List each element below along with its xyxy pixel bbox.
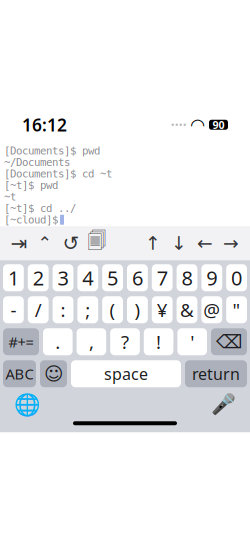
staticText: 6 — [132, 264, 143, 291]
staticText: . — [55, 329, 60, 354]
button[interactable]: 5 — [102, 264, 123, 291]
button[interactable]: , — [77, 328, 106, 355]
staticText: ⇥ — [10, 232, 27, 255]
staticText: 🗐 — [87, 228, 106, 259]
button[interactable]: Undo — [58, 230, 84, 256]
staticText: [~t]$ cd ../ — [4, 202, 76, 214]
staticText: : — [60, 297, 65, 322]
button[interactable]: 0 — [226, 264, 247, 291]
staticText: ↑ — [145, 233, 161, 254]
staticText: ¥ — [157, 297, 168, 322]
button[interactable]: Paste — [84, 230, 110, 256]
staticText: ? — [121, 329, 129, 354]
staticText: ☺ — [44, 363, 63, 384]
button[interactable]: Letters — [3, 360, 36, 387]
button[interactable]: space — [71, 360, 181, 387]
staticText: 90 — [212, 118, 224, 132]
button[interactable]: Right — [218, 230, 244, 256]
button[interactable]: Delete — [211, 328, 247, 355]
button[interactable]: Emoji — [40, 360, 67, 387]
staticText: 🌐 — [13, 392, 40, 416]
staticText: [Documents]$ cd ~t — [4, 168, 112, 180]
staticText: ◠ — [191, 115, 204, 135]
button[interactable]: " — [226, 296, 247, 323]
staticText: " — [233, 297, 241, 322]
button[interactable]: Control — [32, 230, 58, 256]
staticText: 🎤 — [210, 393, 235, 416]
button[interactable]: & — [177, 296, 197, 323]
button[interactable]: ; — [77, 296, 98, 323]
button[interactable]: ( — [102, 296, 123, 323]
staticText: 2 — [33, 264, 44, 291]
staticText: ⌃ — [37, 233, 52, 253]
button[interactable]: ) — [127, 296, 148, 323]
staticText: @ — [203, 297, 220, 322]
staticText: ) — [134, 297, 140, 322]
staticText: ! — [156, 329, 161, 354]
staticText: #+= — [8, 332, 33, 351]
staticText: ↺ — [62, 232, 79, 255]
staticText: 7 — [157, 264, 168, 291]
button[interactable]: 8 — [177, 264, 197, 291]
button[interactable]: Up — [140, 230, 166, 256]
staticText: 8 — [181, 264, 192, 291]
staticText: - — [10, 297, 16, 322]
staticText: space — [104, 363, 148, 384]
staticText: 0 — [231, 264, 242, 291]
button[interactable]: - — [3, 296, 24, 323]
button[interactable]: 9 — [201, 264, 222, 291]
button[interactable]: Dictation — [208, 390, 238, 418]
button[interactable]: : — [53, 296, 73, 323]
staticText: / — [35, 297, 42, 322]
staticText: 16:12 — [22, 113, 67, 136]
button[interactable]: 3 — [53, 264, 73, 291]
button[interactable]: ' — [177, 328, 207, 355]
button[interactable]: Down — [166, 230, 192, 256]
staticText: [~cloud]$ — [4, 214, 58, 226]
button[interactable]: More symbols — [3, 328, 39, 355]
staticText: 4 — [82, 264, 93, 291]
staticText: , — [89, 329, 94, 354]
staticText: return — [192, 363, 240, 384]
button[interactable]: Next keyboard — [12, 390, 42, 418]
staticText: ↓ — [171, 233, 187, 254]
staticText: ; — [85, 297, 90, 322]
staticText: 5 — [107, 264, 118, 291]
staticText: ~/Documents — [4, 156, 70, 168]
button[interactable]: . — [43, 328, 73, 355]
staticText: ( — [110, 297, 116, 322]
staticText: ~t — [4, 191, 16, 203]
staticText: 3 — [57, 264, 68, 291]
staticText: 9 — [206, 264, 217, 291]
button[interactable]: Left — [192, 230, 218, 256]
staticText: ' — [190, 329, 194, 354]
button[interactable]: 1 — [3, 264, 24, 291]
button[interactable]: ! — [144, 328, 173, 355]
button[interactable]: ¥ — [152, 296, 173, 323]
button[interactable]: return — [185, 360, 247, 387]
button[interactable]: 7 — [152, 264, 173, 291]
staticText: ← — [197, 233, 213, 254]
button[interactable]: 4 — [77, 264, 98, 291]
button[interactable]: 6 — [127, 264, 148, 291]
staticText: → — [223, 233, 239, 254]
button[interactable]: / — [28, 296, 49, 323]
button[interactable]: ? — [110, 328, 140, 355]
button[interactable]: 2 — [28, 264, 49, 291]
staticText: [Documents]$ pwd — [4, 145, 100, 157]
staticText: & — [180, 297, 194, 322]
button[interactable]: Tab — [6, 230, 32, 256]
staticText: ⌫ — [216, 331, 242, 352]
staticText: [~t]$ pwd — [4, 179, 58, 191]
staticText: 1 — [8, 264, 19, 291]
button[interactable]: @ — [201, 296, 222, 323]
staticText: ABC — [5, 364, 33, 383]
